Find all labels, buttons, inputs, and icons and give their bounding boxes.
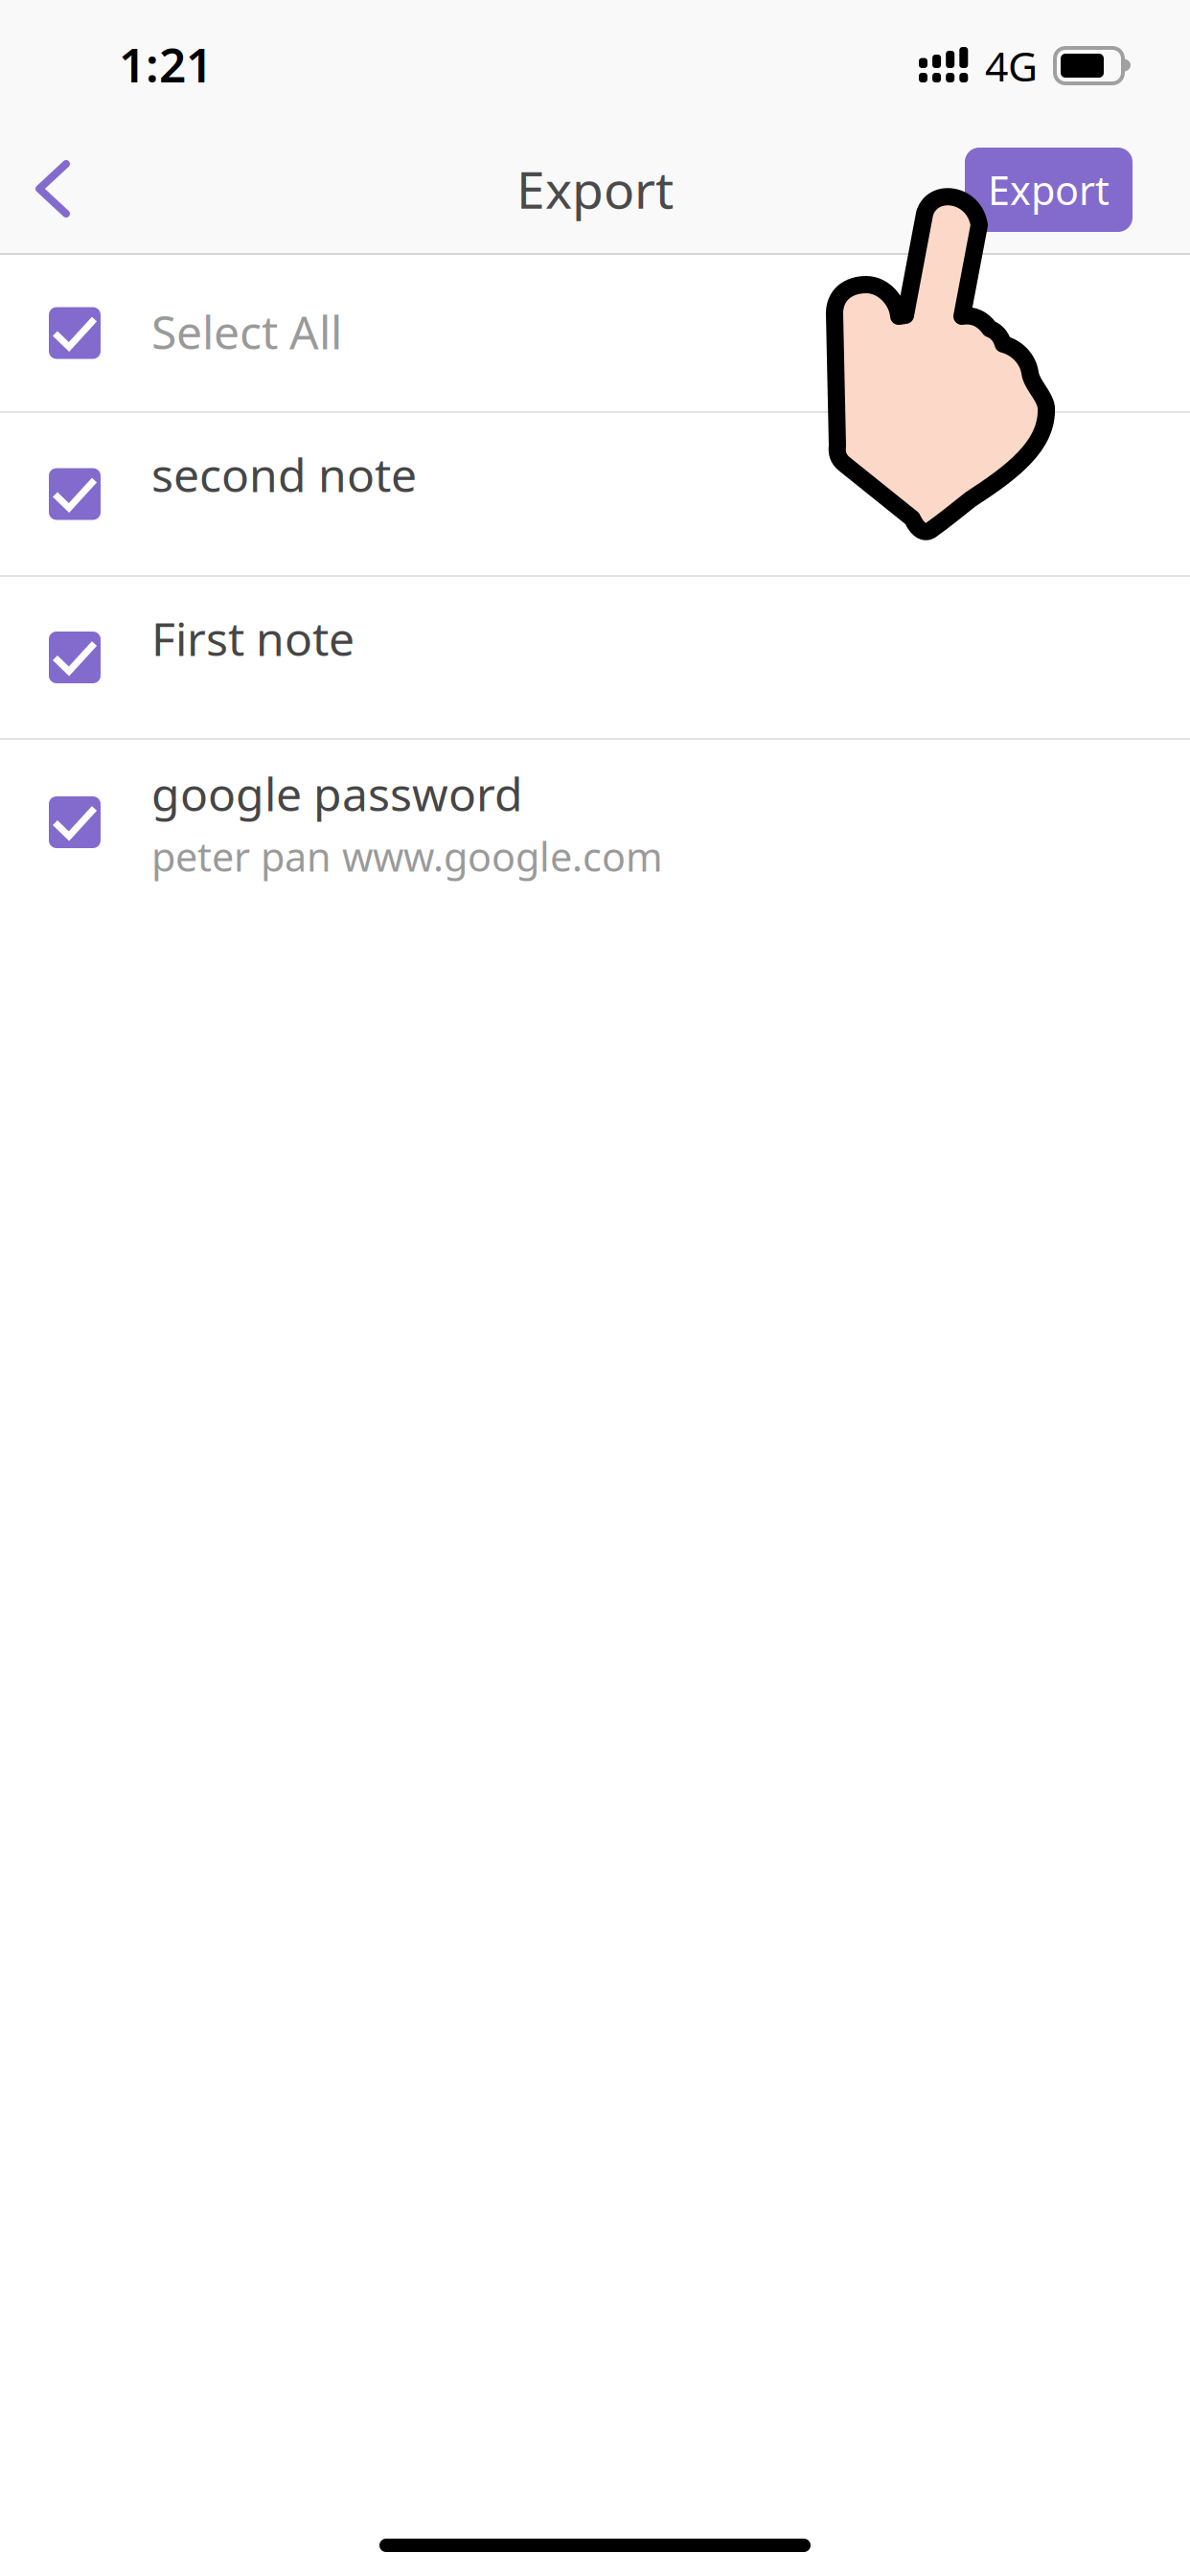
button[interactable]: google password	[0, 740, 1190, 904]
button[interactable]: First note	[0, 577, 1190, 738]
staticText: 1:21	[119, 33, 213, 95]
button[interactable]: Export	[965, 148, 1133, 232]
staticText: First note	[151, 608, 355, 669]
button[interactable]: Select All	[0, 255, 1190, 411]
staticText: Select All	[151, 301, 342, 362]
staticText: 4G	[985, 38, 1038, 93]
staticText: Export	[516, 155, 674, 223]
button[interactable]: second note	[0, 413, 1190, 575]
button[interactable]: Back	[0, 125, 105, 253]
staticText: peter pan www.google.com	[151, 830, 663, 883]
staticText: second note	[151, 444, 417, 505]
staticText: google password	[151, 763, 523, 824]
staticText: Export	[988, 163, 1110, 216]
